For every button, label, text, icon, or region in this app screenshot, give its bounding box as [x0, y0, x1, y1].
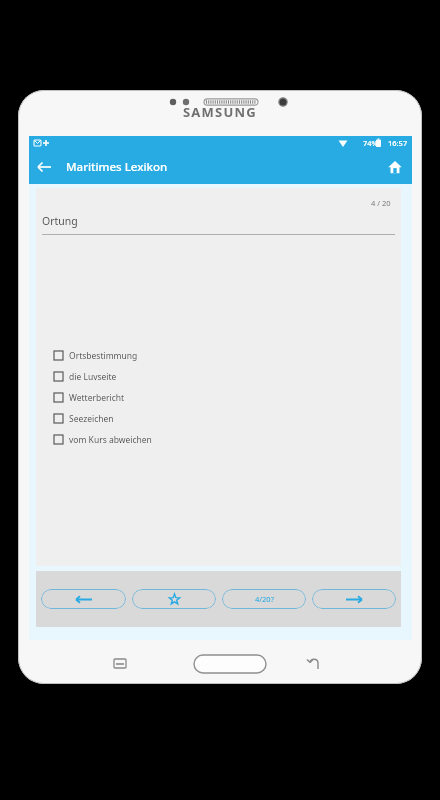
- staticText: Maritimes Lexikon: [66, 159, 168, 175]
- button[interactable]: Ortsbestimmung: [36, 345, 401, 366]
- staticText: 4/20?: [255, 594, 274, 604]
- button[interactable]: die Luvseite: [36, 366, 401, 387]
- button[interactable]: Back: [29, 152, 59, 182]
- staticText: SAMSUNG: [183, 103, 257, 121]
- staticText: 16:57: [388, 138, 408, 148]
- button[interactable]: Favorite: [132, 589, 216, 609]
- button[interactable]: Home: [378, 150, 412, 184]
- staticText: Seezeichen: [69, 413, 114, 425]
- button[interactable]: Seezeichen: [36, 408, 401, 429]
- staticText: Wetterbericht: [69, 392, 125, 404]
- button[interactable]: Wetterbericht: [36, 387, 401, 408]
- button[interactable]: Next: [312, 589, 396, 609]
- staticText: 74%: [363, 138, 378, 148]
- staticText: Ortung: [42, 214, 78, 228]
- staticText: vom Kurs abweichen: [69, 434, 152, 446]
- button[interactable]: Previous: [41, 589, 126, 609]
- staticText: Ortsbestimmung: [69, 350, 138, 362]
- staticText: die Luvseite: [69, 371, 117, 383]
- staticText: 4 / 20: [371, 198, 391, 208]
- button[interactable]: vom Kurs abweichen: [36, 429, 401, 450]
- button[interactable]: 4/20?: [222, 589, 306, 609]
